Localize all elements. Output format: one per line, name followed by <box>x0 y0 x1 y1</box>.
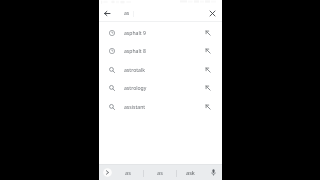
button[interactable]: Clear query <box>206 7 218 20</box>
staticText: astrotalk <box>124 67 145 74</box>
button[interactable]: Voice input <box>208 165 219 180</box>
staticText: as <box>157 169 163 177</box>
staticText: asphalt 9 <box>124 30 146 37</box>
button[interactable]: asphalt 8 <box>99 42 222 60</box>
staticText: ask <box>186 169 195 177</box>
button[interactable]: asphalt 9 <box>99 24 222 42</box>
button[interactable]: as <box>114 165 142 180</box>
staticText: assistant <box>124 104 146 111</box>
button[interactable]: as <box>146 165 174 180</box>
staticText: as <box>124 10 130 17</box>
button[interactable]: assistant <box>99 98 222 116</box>
staticText: astrology <box>124 85 147 92</box>
button[interactable]: Back <box>101 7 113 20</box>
button[interactable]: Insert "assistant" into the search box <box>201 98 214 116</box>
staticText: asphalt 8 <box>124 48 146 55</box>
button[interactable]: astrology <box>99 79 222 97</box>
staticText: as <box>125 169 131 177</box>
button[interactable]: Insert "asphalt 9" into the search box <box>201 24 214 42</box>
button[interactable]: Insert "astrology" into the search box <box>201 79 214 97</box>
button[interactable]: ask <box>176 165 204 180</box>
button[interactable]: astrotalk <box>99 61 222 79</box>
button[interactable]: Insert "astrotalk" into the search box <box>201 61 214 79</box>
button[interactable]: Expand suggestions <box>102 165 113 180</box>
button[interactable]: Insert "asphalt 8" into the search box <box>201 42 214 60</box>
